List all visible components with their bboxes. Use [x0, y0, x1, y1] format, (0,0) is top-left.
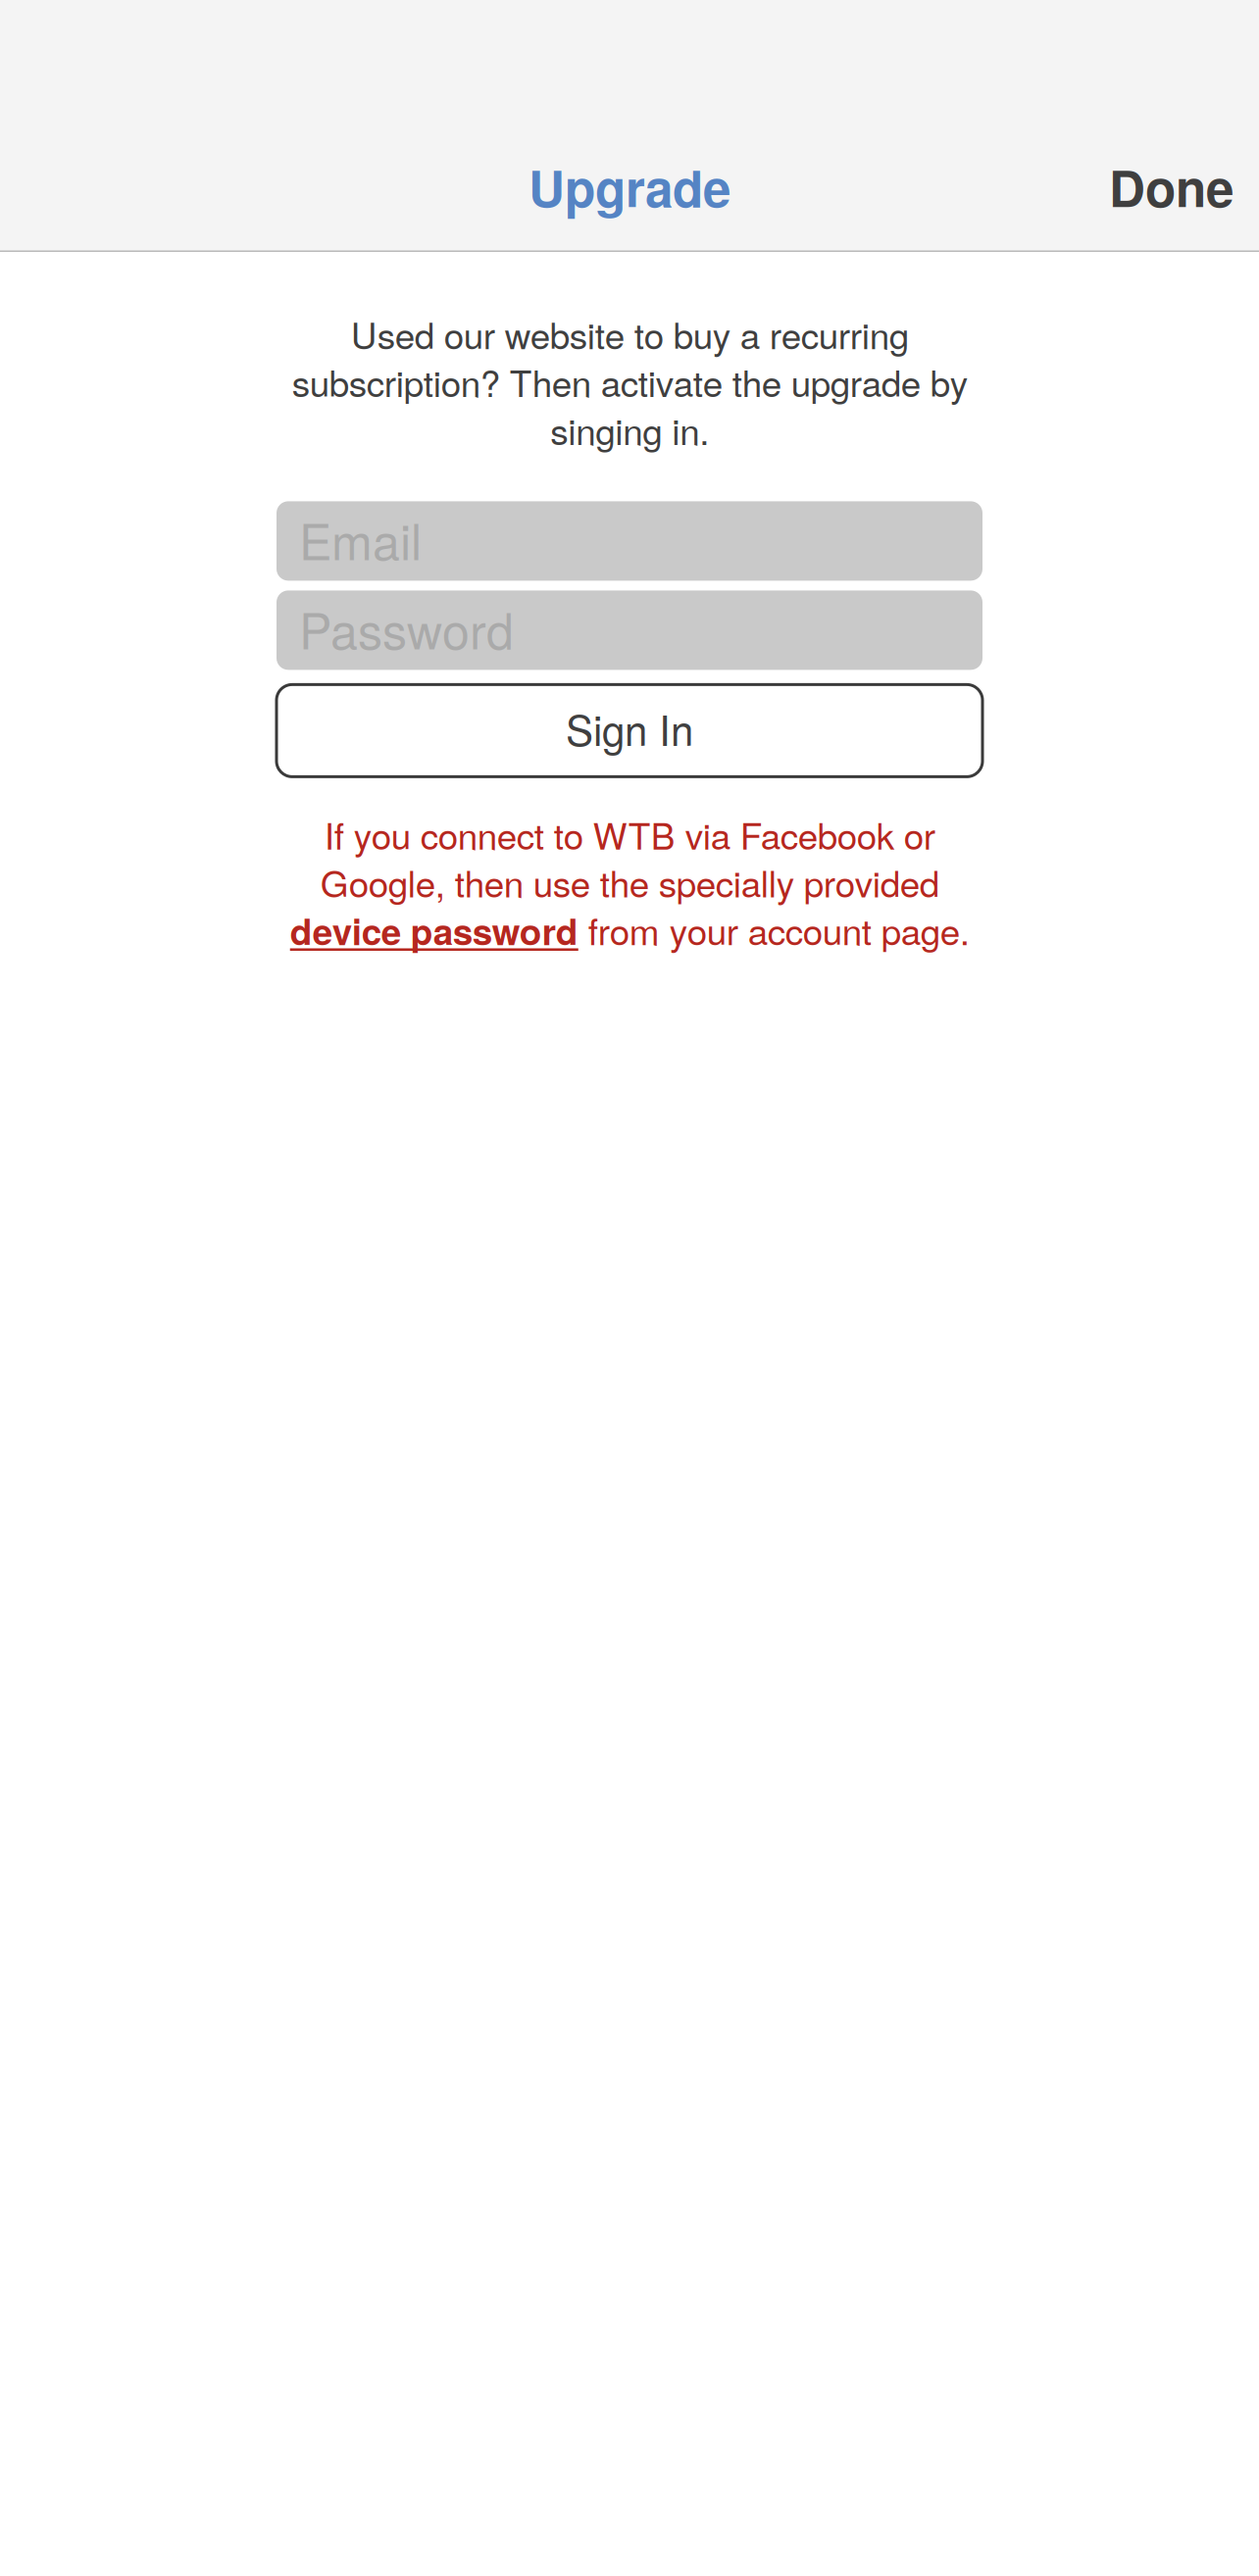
staticText: Sign In: [566, 699, 693, 758]
staticText: Password: [299, 593, 514, 663]
staticText: Used our website to buy a recurring subs…: [292, 308, 967, 455]
button[interactable]: Email: [277, 501, 982, 581]
button[interactable]: Password: [277, 590, 982, 670]
button[interactable]: Sign In: [277, 685, 982, 777]
staticText: Upgrade: [529, 151, 730, 223]
button[interactable]: Done: [1083, 139, 1259, 234]
staticText: Email: [299, 504, 422, 574]
staticText: If you connect to WTB via Facebook or Go…: [290, 808, 969, 956]
staticText: Done: [1109, 151, 1234, 223]
